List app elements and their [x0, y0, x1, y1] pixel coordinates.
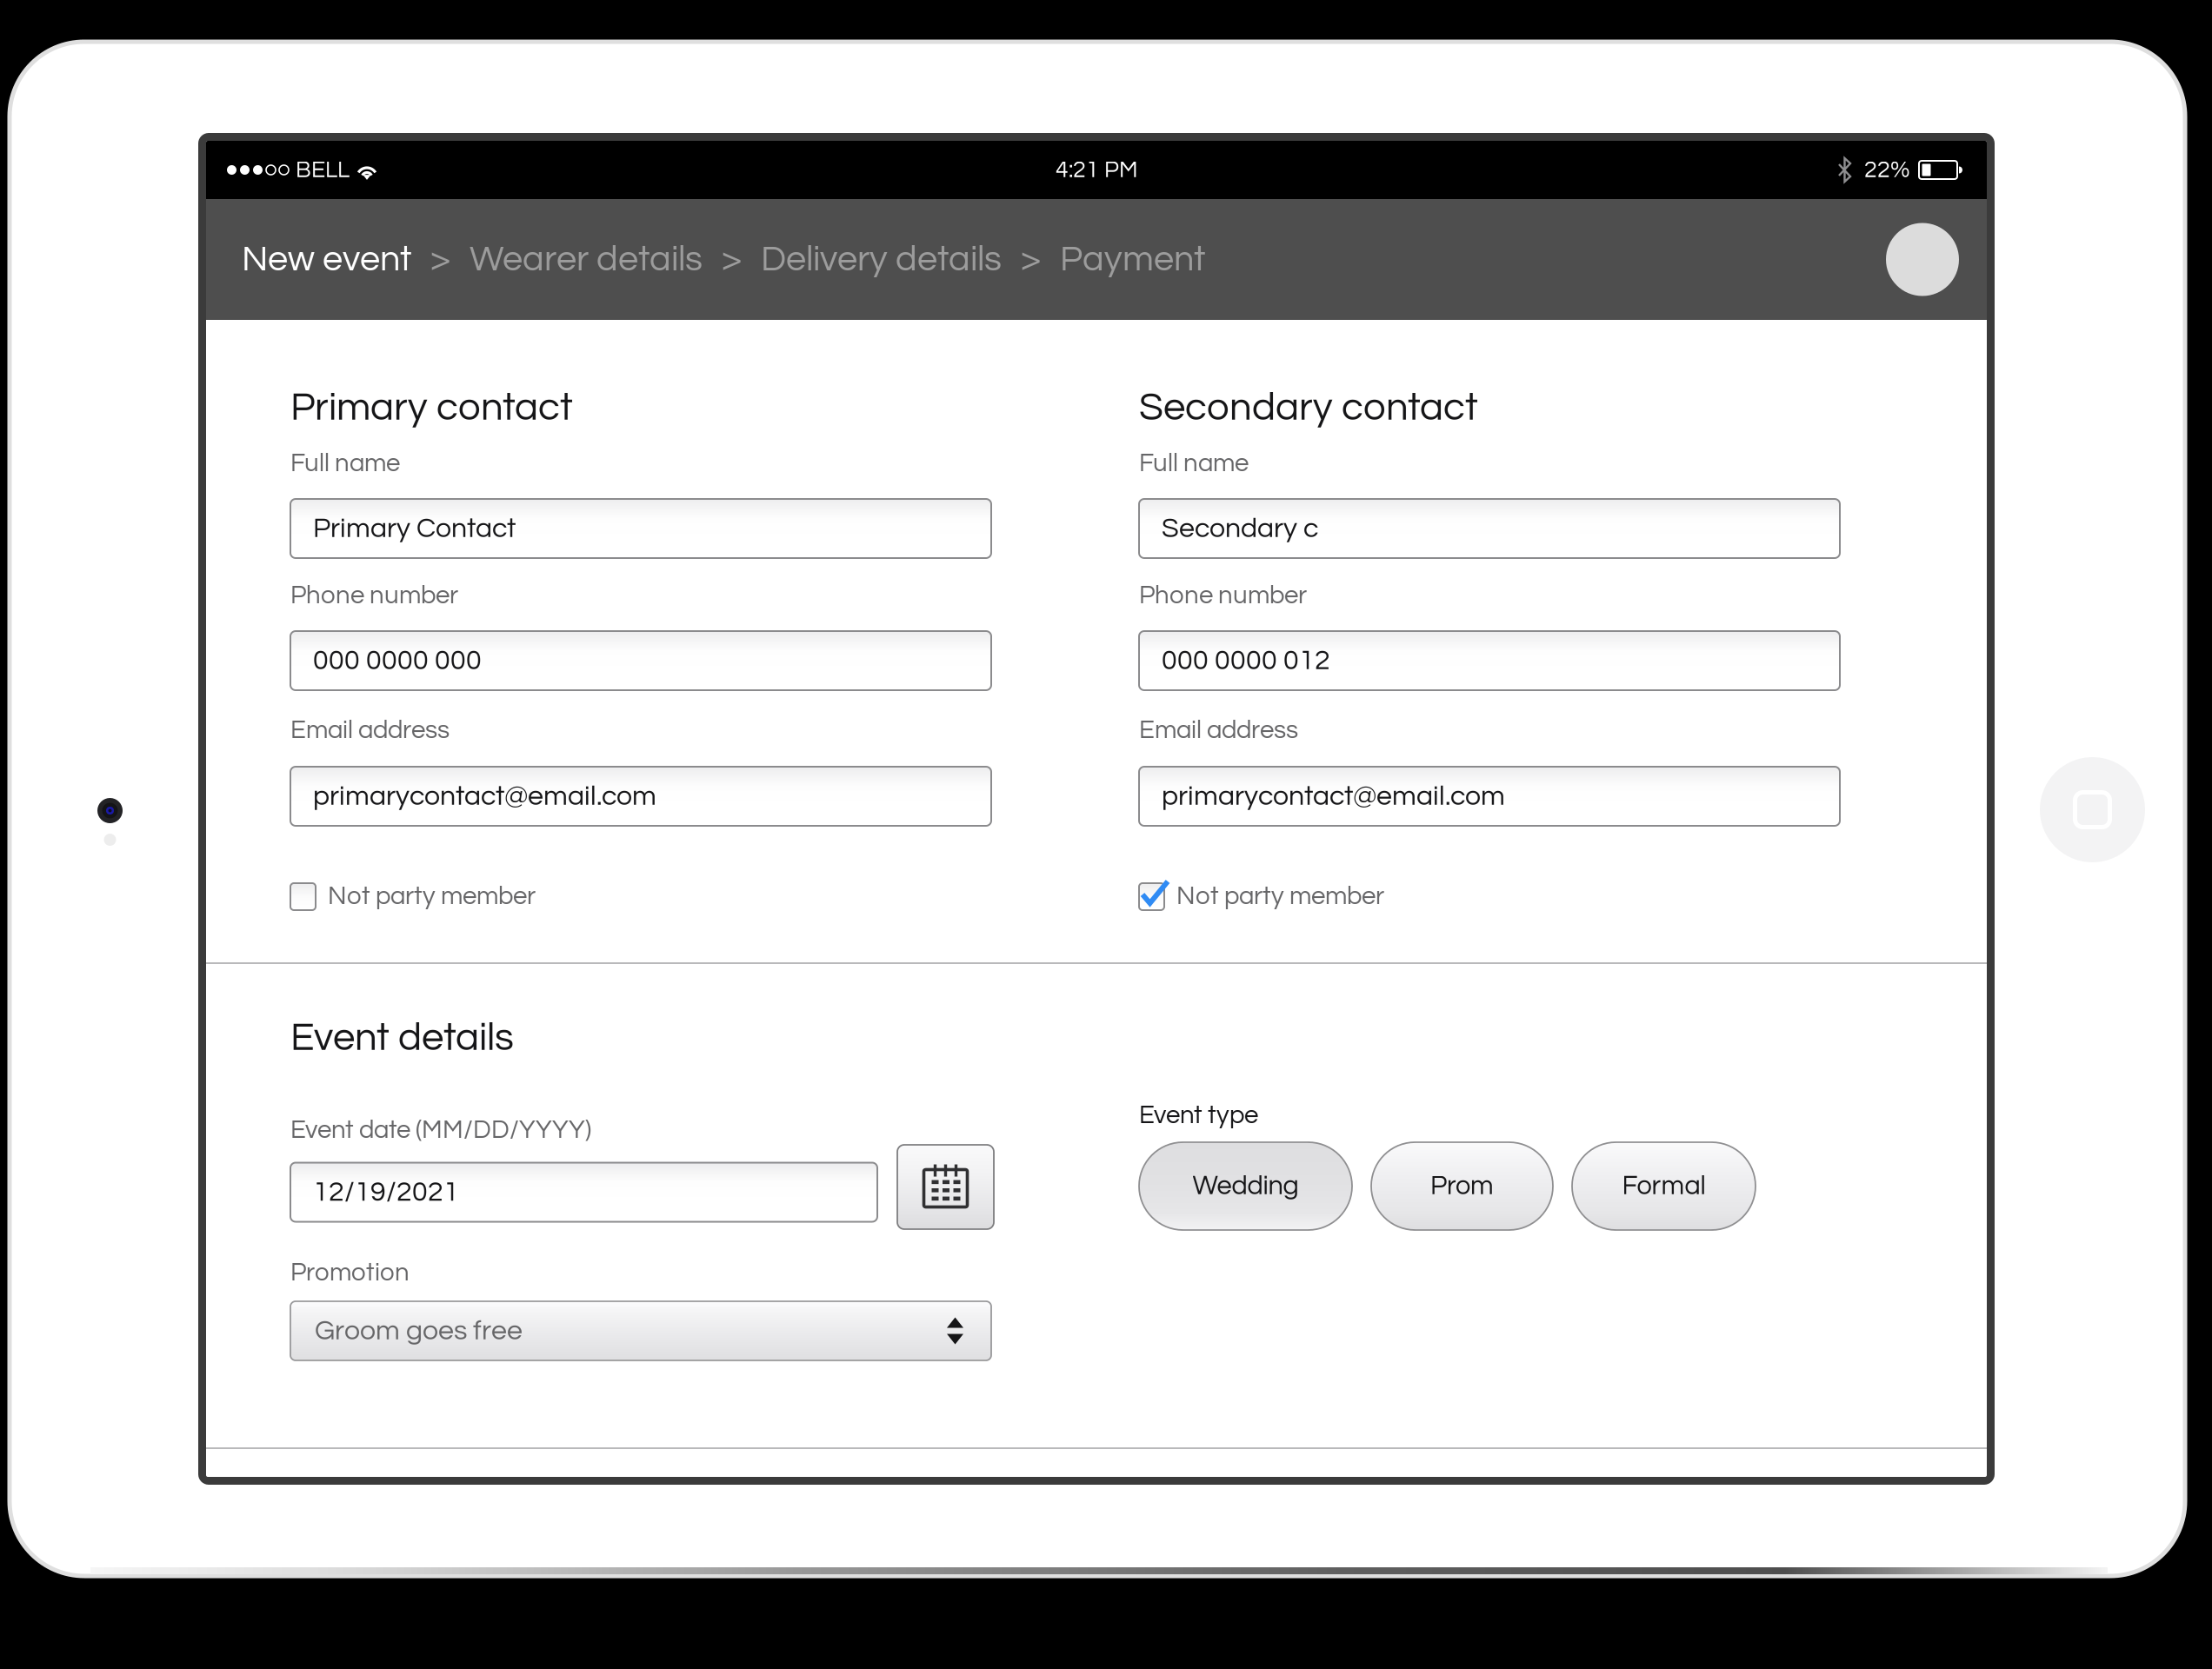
button[interactable]: Wedding — [1139, 1142, 1352, 1230]
staticText: Not party member — [328, 883, 536, 909]
button[interactable]: Payment — [1060, 241, 1205, 278]
staticText: Wearer details — [470, 241, 703, 278]
staticText: Phone number — [290, 582, 458, 609]
staticText: Event type — [1139, 1102, 1258, 1128]
staticText: Primary Contact — [313, 514, 516, 543]
staticText: Email address — [290, 717, 450, 743]
staticText: Primary contact — [290, 387, 573, 428]
staticText: Event details — [290, 1018, 514, 1058]
staticText: Wedding — [1193, 1172, 1299, 1200]
staticText: Payment — [1060, 241, 1205, 278]
button[interactable]: Delivery details — [761, 241, 1002, 278]
staticText: Secondary c — [1162, 514, 1318, 543]
staticText: Not party member — [1176, 883, 1384, 909]
staticText: BELL — [296, 158, 350, 182]
staticText: > — [1021, 241, 1041, 278]
button[interactable]: Groom goes free — [290, 1301, 991, 1360]
button[interactable]: Formal — [1572, 1142, 1756, 1230]
button[interactable]: Wearer details — [470, 241, 703, 278]
button[interactable]: Not party member — [290, 880, 536, 913]
staticText: Event date (MM/DD/YYYY) — [290, 1117, 591, 1143]
button[interactable]: Not party member — [1139, 880, 1384, 913]
staticText: Delivery details — [761, 241, 1002, 278]
staticText: Secondary contact — [1139, 387, 1478, 428]
staticText: 22% — [1864, 158, 1910, 182]
staticText: primarycontact@email.com — [313, 782, 656, 811]
staticText: 000 0000 012 — [1162, 646, 1330, 675]
staticText: Groom goes free — [315, 1317, 523, 1345]
staticText: > — [722, 241, 742, 278]
button[interactable]: Choose date — [897, 1145, 994, 1229]
staticText: Full name — [1139, 450, 1249, 476]
staticText: New event — [242, 241, 411, 278]
staticText: Formal — [1622, 1172, 1706, 1200]
staticText: Promotion — [290, 1259, 410, 1286]
staticText: 12/19/2021 — [313, 1178, 459, 1207]
staticText: Prom — [1430, 1172, 1494, 1200]
button[interactable]: Account — [1886, 223, 1959, 296]
staticText: 4:21 PM — [1056, 158, 1137, 182]
staticText: > — [430, 241, 450, 278]
staticText: Full name — [290, 450, 400, 476]
staticText: 000 0000 000 — [313, 646, 482, 675]
button[interactable]: New event — [242, 241, 411, 278]
staticText: primarycontact@email.com — [1162, 782, 1505, 811]
staticText: Phone number — [1139, 582, 1307, 609]
button[interactable]: Prom — [1371, 1142, 1553, 1230]
staticText: Email address — [1139, 717, 1298, 743]
